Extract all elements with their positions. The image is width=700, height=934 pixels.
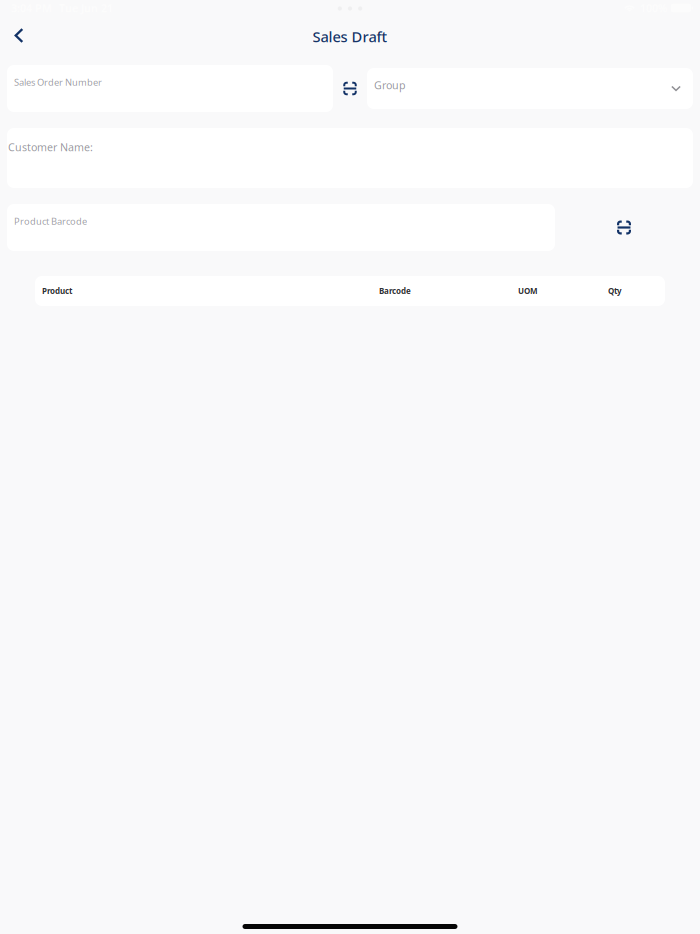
button[interactable]: Scan sales order number — [333, 65, 367, 112]
staticText: Sales Draft — [312, 27, 387, 46]
staticText: Sales Order Number — [14, 76, 102, 88]
staticText: Barcode — [379, 286, 411, 296]
button[interactable]: Group — [367, 68, 693, 109]
button[interactable]: Sales Order Number — [7, 65, 333, 112]
staticText: UOM — [518, 286, 538, 296]
button[interactable]: Customer Name: — [7, 128, 693, 188]
staticText: Product — [42, 286, 72, 296]
button[interactable]: Back — [5, 20, 33, 50]
button[interactable]: Scan product barcode — [609, 204, 639, 251]
staticText: Product Barcode — [14, 215, 87, 227]
button[interactable]: Product Barcode — [7, 204, 555, 251]
staticText: Group — [374, 78, 406, 92]
staticText: Customer Name: — [8, 140, 93, 154]
staticText: Qty — [608, 286, 622, 296]
